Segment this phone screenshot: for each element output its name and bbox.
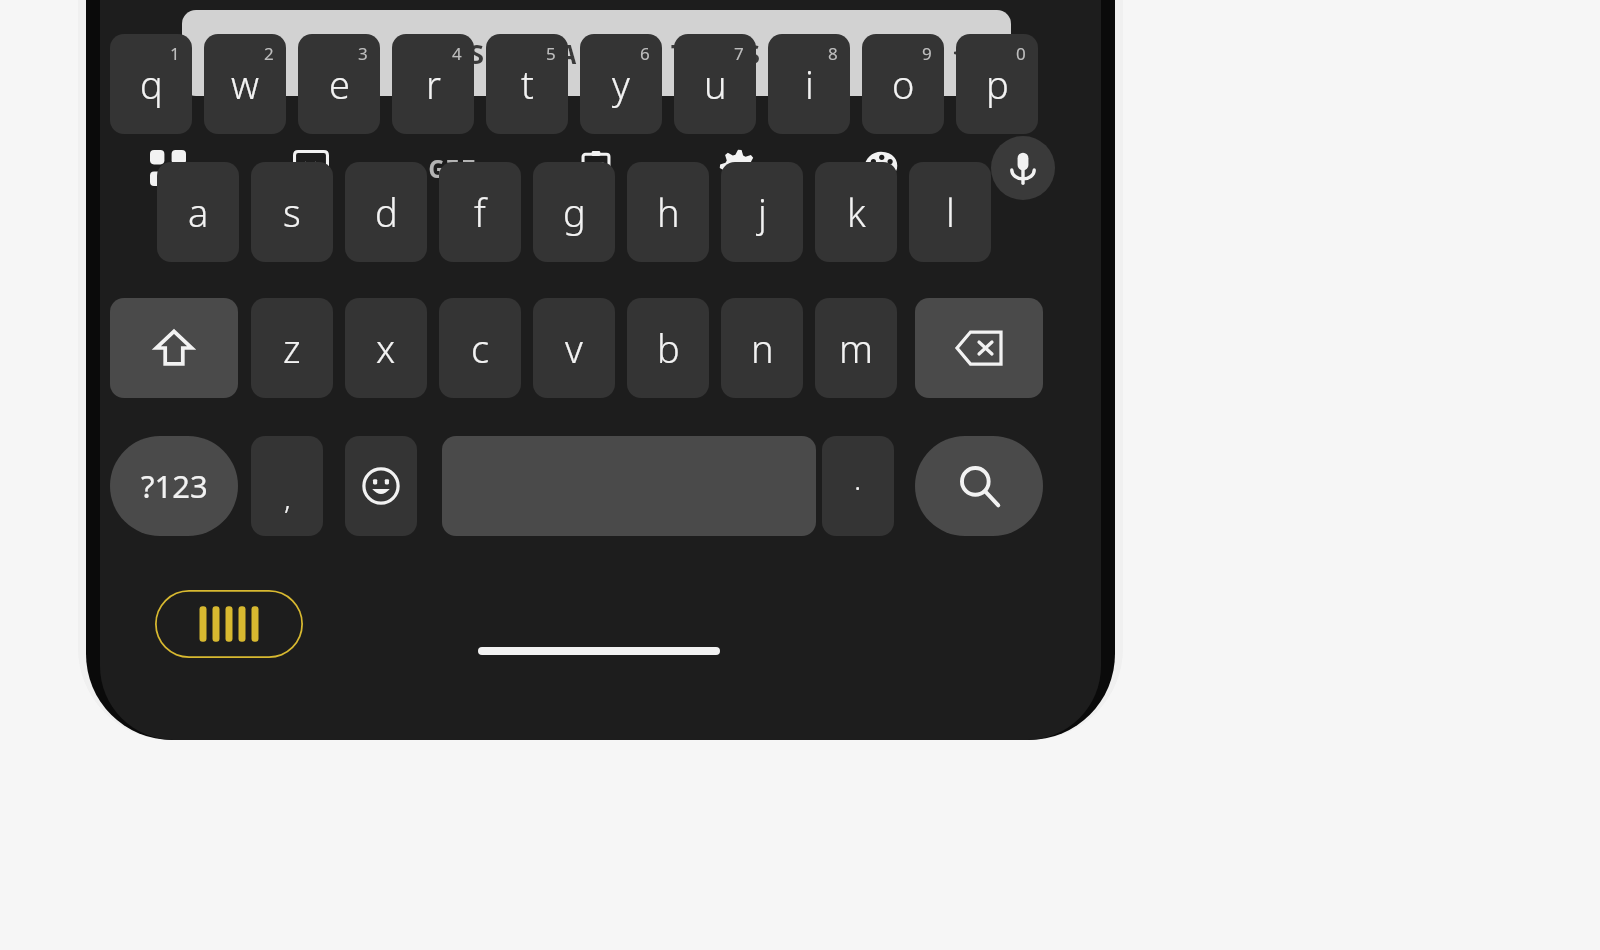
staticText: g xyxy=(563,186,586,238)
button[interactable]: w xyxy=(204,34,286,134)
staticText: s xyxy=(283,186,301,238)
staticText: l xyxy=(946,186,955,238)
button[interactable]: e xyxy=(298,34,380,134)
staticText: z xyxy=(283,322,301,374)
button[interactable]: o xyxy=(862,34,944,134)
button[interactable]: Next xyxy=(945,31,989,75)
button[interactable]: f xyxy=(439,162,521,262)
button[interactable]: Close xyxy=(204,33,244,73)
staticText: 2 xyxy=(264,42,274,65)
button[interactable]: GIF xyxy=(420,135,486,201)
button[interactable]: Keyboard toggle xyxy=(155,590,303,658)
staticText: v xyxy=(565,322,583,374)
button[interactable]: u xyxy=(674,34,756,134)
button[interactable]: i xyxy=(768,34,850,134)
button[interactable]: , xyxy=(251,436,323,536)
staticText: y xyxy=(612,58,630,110)
button[interactable]: r xyxy=(392,34,474,134)
staticText: 0 xyxy=(1016,42,1026,65)
button[interactable]: q xyxy=(110,34,192,134)
staticText: q xyxy=(140,58,163,110)
button[interactable]: d xyxy=(345,162,427,262)
button[interactable]: Apps xyxy=(135,135,201,201)
button[interactable]: Clipboard xyxy=(563,135,629,201)
button[interactable]: Previous xyxy=(887,31,931,75)
button[interactable]: j xyxy=(721,162,803,262)
button[interactable]: s xyxy=(251,162,333,262)
button[interactable]: Shift xyxy=(110,298,238,398)
staticText: · xyxy=(854,466,862,507)
staticText: i xyxy=(805,58,814,110)
button[interactable]: ?123 xyxy=(110,436,238,536)
staticText: u xyxy=(704,58,727,110)
staticText: x xyxy=(376,322,396,374)
staticText: e xyxy=(329,58,350,110)
staticText: 6 xyxy=(640,42,650,65)
button[interactable]: c xyxy=(439,298,521,398)
button[interactable]: Search xyxy=(915,436,1043,536)
button[interactable]: m xyxy=(815,298,897,398)
button[interactable]: Emoji xyxy=(345,436,417,536)
staticText: m xyxy=(839,322,873,374)
button[interactable]: z xyxy=(251,298,333,398)
staticText: 5 xyxy=(546,42,556,65)
staticText: 1 xyxy=(170,42,180,65)
staticText: 7 xyxy=(734,42,744,65)
staticText: r xyxy=(426,58,441,110)
button[interactable]: b xyxy=(627,298,709,398)
staticText: t xyxy=(521,58,534,110)
button[interactable]: Settings xyxy=(705,135,771,201)
button[interactable]: y xyxy=(580,34,662,134)
button[interactable]: l xyxy=(909,162,991,262)
staticText: ?123 xyxy=(141,465,208,507)
button[interactable]: a xyxy=(157,162,239,262)
staticText: h xyxy=(657,186,680,238)
button[interactable]: Voice input xyxy=(990,135,1056,201)
staticText: k xyxy=(847,186,866,238)
staticText: j xyxy=(758,186,767,238)
button[interactable]: · xyxy=(822,436,894,536)
button[interactable]: k xyxy=(815,162,897,262)
staticText: o xyxy=(892,58,915,110)
button[interactable]: g xyxy=(533,162,615,262)
button[interactable]: Backspace xyxy=(915,298,1043,398)
button[interactable]: Stickers xyxy=(278,135,344,201)
button[interactable]: Close xyxy=(182,10,1011,96)
button[interactable]: x xyxy=(345,298,427,398)
staticText: 9 xyxy=(922,42,932,65)
staticText: ESSENTIAL AI TOOLS xyxy=(431,35,763,72)
staticText: 8 xyxy=(828,42,838,65)
staticText: f xyxy=(474,186,486,238)
button[interactable]: h xyxy=(627,162,709,262)
button[interactable]: Themes xyxy=(848,135,914,201)
staticText: 4 xyxy=(452,42,462,65)
staticText: GIF xyxy=(429,151,478,185)
staticText: , xyxy=(284,477,291,518)
staticText: b xyxy=(657,322,680,374)
staticText: w xyxy=(231,58,259,110)
button[interactable]: t xyxy=(486,34,568,134)
staticText: a xyxy=(188,186,209,238)
staticText: 3 xyxy=(358,42,368,65)
button[interactable]: n xyxy=(721,298,803,398)
button[interactable]: p xyxy=(956,34,1038,134)
staticText: n xyxy=(751,322,774,374)
button[interactable]: v xyxy=(533,298,615,398)
staticText: p xyxy=(986,58,1009,110)
staticText: d xyxy=(375,186,398,238)
staticText: c xyxy=(471,322,490,374)
